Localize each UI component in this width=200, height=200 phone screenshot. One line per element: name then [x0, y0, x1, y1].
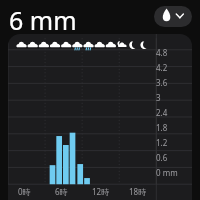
- staticText: 0.6: [156, 152, 168, 163]
- staticText: 3: [156, 92, 161, 103]
- staticText: 6 mm: [9, 3, 77, 37]
- staticText: 2.4: [156, 107, 168, 118]
- button[interactable]: Precipitation, change metric: [154, 6, 192, 27]
- staticText: 0 mm: [156, 167, 178, 178]
- staticText: 18時: [129, 186, 147, 197]
- staticText: 1日の合計: [9, 38, 51, 50]
- staticText: 4.8: [156, 47, 168, 58]
- button[interactable]: 4.8: [8, 34, 192, 200]
- staticText: 1.2: [156, 137, 168, 148]
- staticText: 3.6: [156, 77, 168, 88]
- staticText: 1.8: [156, 122, 168, 133]
- staticText: 12時: [92, 186, 110, 197]
- staticText: 0時: [18, 186, 31, 197]
- staticText: 4.2: [156, 62, 168, 73]
- staticText: 6時: [55, 186, 68, 197]
